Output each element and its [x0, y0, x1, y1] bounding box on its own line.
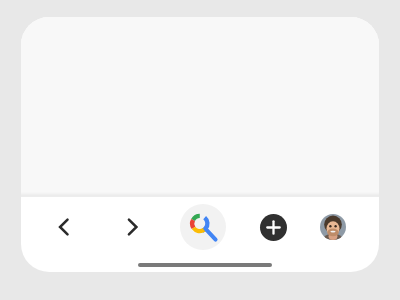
button[interactable]: Forward — [110, 205, 154, 249]
button[interactable]: Profile — [315, 209, 351, 245]
button[interactable]: New tab — [254, 208, 292, 246]
button[interactable]: Back — [42, 205, 86, 249]
button[interactable]: Google Search — [180, 204, 226, 250]
